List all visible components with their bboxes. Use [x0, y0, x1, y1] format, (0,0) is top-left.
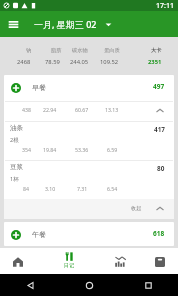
staticText: 豆浆	[10, 163, 24, 171]
staticText: 油条	[10, 124, 24, 132]
button[interactable]: Recent apps	[119, 274, 178, 296]
staticText: 109.52	[100, 58, 119, 66]
staticText: 2351	[148, 58, 162, 66]
staticText: 早餐	[32, 83, 46, 92]
staticText: 618	[153, 229, 165, 238]
staticText: 2468	[17, 58, 31, 66]
staticText: 84	[23, 185, 29, 192]
staticText: 2根	[10, 136, 19, 144]
staticText: 53.36	[75, 146, 89, 153]
button[interactable]: 早餐	[4, 75, 174, 100]
staticText: 3.10	[45, 185, 56, 192]
button[interactable]: 午餐	[4, 222, 174, 246]
staticText: 60.67	[75, 106, 89, 113]
button[interactable]: Statistics	[98, 248, 142, 275]
staticText: 一月, 星期三 02	[34, 18, 97, 30]
staticText: 354	[22, 146, 31, 153]
staticText: 497	[153, 82, 165, 91]
staticText: 碳水物	[72, 47, 88, 54]
staticText: 80	[157, 164, 165, 173]
staticText: 6.59	[107, 146, 118, 153]
staticText: 蛋白质	[104, 47, 120, 54]
button[interactable]: Weight	[138, 248, 178, 275]
staticText: 6.54	[107, 185, 118, 192]
staticText: 脂肪	[51, 47, 62, 54]
button[interactable]: Home	[60, 274, 119, 296]
button[interactable]: 油条	[4, 121, 174, 159]
staticText: 13.13	[105, 106, 119, 113]
staticText: 午餐	[32, 230, 46, 239]
staticText: 417	[154, 125, 165, 134]
staticText: 438	[22, 106, 31, 113]
staticText: 日记	[64, 262, 74, 268]
staticText: 22.94	[43, 106, 57, 113]
button[interactable]: Open navigation menu	[0, 11, 26, 37]
button[interactable]: 豆浆	[4, 160, 174, 198]
button[interactable]: 日记	[47, 248, 91, 275]
staticText: 收起	[131, 205, 142, 212]
staticText: 244.05	[70, 58, 89, 66]
staticText: 钠	[26, 47, 32, 54]
staticText: 17:11	[156, 1, 174, 11]
staticText: 19.84	[43, 146, 57, 153]
button[interactable]: 收起	[4, 199, 174, 219]
button[interactable]: Choose date	[102, 18, 114, 30]
staticText: 78.59	[45, 58, 60, 66]
staticText: 1杯	[10, 175, 19, 183]
staticText: 大卡	[151, 47, 162, 54]
button[interactable]: Home	[0, 248, 40, 275]
staticText: 7.31	[77, 185, 88, 192]
button[interactable]: Back	[0, 274, 60, 296]
